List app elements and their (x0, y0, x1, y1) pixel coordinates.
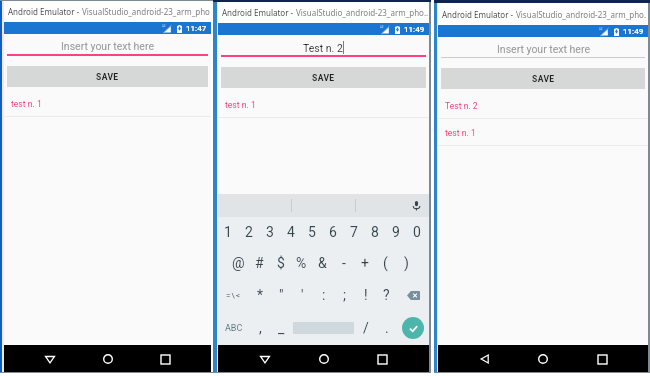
staticText: Insert your text here (497, 43, 590, 55)
staticText: ABC (225, 323, 243, 334)
button[interactable]: =\< (218, 279, 250, 311)
staticText: 11:49 (623, 27, 644, 36)
button[interactable]: SAVE (7, 66, 208, 87)
button[interactable]: Home (531, 347, 555, 371)
staticText: ' (301, 287, 304, 303)
button[interactable]: " (271, 279, 292, 311)
staticText: SAVE (96, 72, 119, 82)
staticText: _ (278, 320, 285, 336)
button[interactable]: & (312, 247, 333, 279)
button[interactable]: Recent apps (590, 347, 614, 371)
staticText: ( (383, 255, 388, 271)
button[interactable]: SAVE (221, 67, 426, 88)
button[interactable]: ( (375, 247, 396, 279)
staticText: - (342, 255, 346, 271)
button[interactable]: Test n. 2 (438, 92, 648, 119)
staticText: @ (232, 255, 245, 271)
staticText: VisualStudio_android-23_arm_pho... (516, 9, 648, 20)
button[interactable]: Insert your text here (4, 38, 211, 54)
button[interactable]: 3 (259, 217, 280, 247)
staticText: Android Emulator - (442, 9, 516, 20)
button[interactable]: Home (96, 347, 120, 371)
button[interactable]: ; (334, 279, 355, 311)
button[interactable]: Test n. 2 (218, 39, 429, 55)
staticText: Test n. 2 (303, 42, 343, 54)
staticText: 5 (308, 224, 316, 240)
button[interactable]: Back (38, 347, 62, 371)
staticText: Test n. 2 (445, 101, 478, 111)
button[interactable]: - (333, 247, 354, 279)
button[interactable]: 6 (322, 217, 343, 247)
button[interactable]: 9 (385, 217, 406, 247)
staticText: 11:47 (186, 24, 207, 33)
button[interactable]: Insert your text here (438, 41, 648, 57)
staticText: test n. 1 (225, 100, 256, 110)
button[interactable]: Recent apps (153, 347, 177, 371)
staticText: , (259, 320, 262, 336)
staticText: . (385, 320, 389, 336)
staticText: 3 (266, 224, 274, 240)
button[interactable]: 7 (343, 217, 364, 247)
staticText: $ (277, 255, 285, 271)
staticText: SAVE (312, 73, 335, 83)
staticText: Android Emulator - (8, 6, 82, 17)
button[interactable]: test n. 1 (4, 90, 211, 117)
staticText: 6 (329, 224, 337, 240)
button[interactable]: Back (253, 347, 277, 371)
button[interactable]: _ (271, 311, 292, 345)
staticText: Android Emulator - (222, 7, 296, 18)
staticText: VisualStudio_android-23_arm_pho... (296, 7, 429, 18)
staticText: 7 (350, 224, 358, 240)
staticText: VisualStudio_android-23_arm_pho... (82, 6, 211, 17)
button[interactable]: Home (312, 347, 336, 371)
button[interactable]: $ (270, 247, 291, 279)
button[interactable]: ? (376, 279, 397, 311)
staticText: 1 (224, 224, 232, 240)
staticText: ! (364, 287, 368, 303)
button[interactable]: . (376, 311, 397, 345)
button[interactable]: , (250, 311, 271, 345)
staticText: ) (404, 255, 409, 271)
staticText: # (255, 255, 264, 271)
button[interactable]: : (313, 279, 334, 311)
button[interactable]: 5 (301, 217, 322, 247)
button[interactable]: test n. 1 (218, 91, 429, 118)
staticText: 11:49 (404, 25, 425, 34)
button[interactable]: SAVE (441, 68, 645, 89)
button[interactable]: Delete (397, 279, 429, 311)
button[interactable]: 1 (218, 217, 238, 247)
button[interactable]: % (291, 247, 312, 279)
button[interactable]: ' (292, 279, 313, 311)
button[interactable]: Enter (402, 317, 424, 339)
button[interactable]: * (250, 279, 271, 311)
button[interactable]: 8 (364, 217, 385, 247)
staticText: " (279, 287, 284, 303)
button[interactable]: ! (355, 279, 376, 311)
button[interactable]: 0 (406, 217, 427, 247)
staticText: test n. 1 (11, 99, 42, 109)
staticText: 0 (413, 224, 421, 240)
staticText: / (363, 320, 369, 336)
button[interactable]: Recent apps (370, 347, 394, 371)
button[interactable]: 4 (280, 217, 301, 247)
button[interactable]: 2 (238, 217, 259, 247)
staticText: & (318, 255, 327, 271)
button[interactable]: test n. 1 (438, 119, 648, 146)
button[interactable]: ABC (218, 311, 250, 345)
button[interactable]: + (354, 247, 375, 279)
button[interactable]: # (249, 247, 270, 279)
staticText: * (257, 287, 264, 303)
staticText: 4 (287, 224, 295, 240)
staticText: Insert your text here (61, 40, 154, 52)
staticText: 2 (245, 224, 253, 240)
button[interactable]: ) (396, 247, 417, 279)
button[interactable]: Back (473, 347, 497, 371)
button[interactable]: / (355, 311, 376, 345)
staticText: : (322, 287, 326, 303)
button[interactable]: @ (228, 247, 249, 279)
button[interactable]: Voice input (411, 200, 422, 211)
staticText: ? (383, 287, 390, 303)
